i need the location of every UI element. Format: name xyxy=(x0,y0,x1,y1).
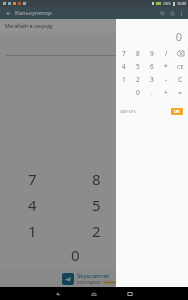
button[interactable]: Backspace xyxy=(173,47,187,60)
button[interactable]: Recents xyxy=(125,289,135,299)
staticText: 7 xyxy=(122,49,126,58)
button[interactable]: 3 xyxy=(145,73,159,86)
button[interactable]: Skyscanner xyxy=(0,269,188,287)
staticText: 4 xyxy=(28,195,37,215)
staticText: 9 xyxy=(150,49,154,58)
button[interactable]: - xyxy=(159,73,173,86)
staticText: 0 xyxy=(175,29,182,44)
button[interactable]: OK xyxy=(174,109,180,114)
button[interactable]: Back xyxy=(4,9,12,17)
button[interactable]: Гигабайт в секунду (ГБ/с) xyxy=(0,97,188,110)
button[interactable]: 6 xyxy=(145,60,159,73)
staticText: 4 xyxy=(122,62,126,71)
button[interactable]: 8 xyxy=(131,47,145,60)
staticText: CE xyxy=(177,63,184,70)
staticText: 12:09 xyxy=(177,1,186,6)
button[interactable]: 7 xyxy=(117,47,131,60)
button[interactable]: 2 xyxy=(131,73,145,86)
staticText: 5 xyxy=(136,62,140,71)
button[interactable]: Килобайт в секунду (кБ/с) xyxy=(0,71,188,84)
button[interactable]: Килобит в секунду (кб/с) xyxy=(0,149,188,162)
button[interactable]: Back xyxy=(53,289,63,299)
staticText: 8 xyxy=(92,169,101,189)
button[interactable]: + xyxy=(159,86,173,99)
button[interactable]: Мегабайт в секунду (МБ/с) xyxy=(0,84,188,97)
button[interactable]: * xyxy=(159,60,173,73)
button[interactable]: More options xyxy=(177,9,185,17)
button[interactable]: 8 xyxy=(64,166,128,192)
staticText: Мегабайт в секунду (МБ/с) xyxy=(120,88,181,94)
staticText: Skyscanner xyxy=(77,272,110,280)
staticText: 2 xyxy=(92,221,101,241)
button[interactable]: 1 xyxy=(117,73,131,86)
staticText: 8 xyxy=(136,49,140,58)
button[interactable]: 4 xyxy=(0,192,64,218)
staticText: 1 xyxy=(122,75,126,84)
staticText: 2 xyxy=(136,75,140,84)
staticText: Калькулятор xyxy=(15,9,52,17)
button[interactable]: Бит в секунду (б/с) xyxy=(0,136,188,149)
staticText: Мегабайт в секунду xyxy=(5,23,53,30)
button[interactable]: / xyxy=(159,47,173,60)
button[interactable]: Search xyxy=(157,8,167,18)
button[interactable]: = xyxy=(173,86,187,99)
button[interactable]: 4 xyxy=(117,60,131,73)
staticText: Байт в секунду (Б/с) xyxy=(136,62,181,68)
button[interactable]: 1 xyxy=(0,218,64,244)
staticText: * xyxy=(164,62,168,71)
button[interactable]: 0 xyxy=(71,245,80,265)
button[interactable]: Терабайт в секунду (ТБ/с) xyxy=(0,110,188,123)
button[interactable]: 5 xyxy=(131,60,145,73)
button[interactable]: Петабайт в секунду (ПБ/с) xyxy=(0,123,188,136)
staticText: 7 xyxy=(28,169,37,189)
staticText: Терабайт в секунду (ТБ/с) xyxy=(123,114,181,120)
staticText: OK xyxy=(174,109,180,114)
staticText: 3 xyxy=(150,75,154,84)
staticText: = xyxy=(178,88,182,97)
button[interactable]: Home xyxy=(89,289,99,299)
staticText: 6 xyxy=(150,62,154,71)
button[interactable]: Байт в секунду (Б/с) xyxy=(0,58,188,71)
staticText: Килобайт в секунду (кБ/с) xyxy=(122,75,181,81)
button[interactable]: ЗАКРЫТЬ xyxy=(120,109,137,114)
staticText: C xyxy=(178,75,183,84)
staticText: 100% xyxy=(163,2,171,6)
button[interactable]: Favorite xyxy=(167,8,177,18)
button[interactable]: 9 xyxy=(145,47,159,60)
button[interactable]: 2 xyxy=(64,218,128,244)
button[interactable]: . xyxy=(145,86,159,99)
staticText: 0 xyxy=(71,245,80,265)
staticText: 1 xyxy=(28,221,37,241)
button[interactable]: C xyxy=(173,73,187,86)
other: Backspace xyxy=(173,47,187,60)
button[interactable]: 5 xyxy=(64,192,128,218)
button[interactable]: 0 xyxy=(131,86,145,99)
staticText: 0 xyxy=(136,88,140,97)
staticText: - xyxy=(165,75,168,84)
button[interactable]: CE xyxy=(173,60,187,73)
button[interactable]: 7 xyxy=(0,166,64,192)
staticText: 5 xyxy=(92,195,101,215)
staticText: / xyxy=(165,49,168,58)
staticText: БЕСПЛАТНО xyxy=(77,280,101,285)
staticText: . xyxy=(151,88,153,97)
staticText: + xyxy=(164,88,168,97)
